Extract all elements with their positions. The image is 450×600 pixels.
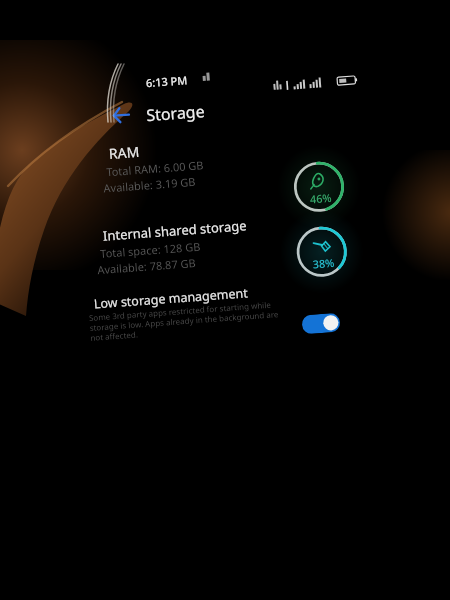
- staticText: 46%: [309, 190, 332, 206]
- button[interactable]: Boost RAM, 46 percent: [291, 159, 347, 215]
- staticText: Total space: 128 GB: [100, 239, 201, 261]
- button[interactable]: RAM: [96, 132, 280, 201]
- staticText: 6:13 PM: [145, 72, 188, 90]
- staticText: Some 3rd party apps restricted for start…: [88, 298, 280, 343]
- button[interactable]: Low storage management: [87, 278, 341, 352]
- staticText: RAM: [108, 142, 141, 163]
- staticText: Total RAM: 6.00 GB: [106, 157, 204, 179]
- staticText: Low storage management: [93, 284, 249, 313]
- button[interactable]: Internal shared storage: [94, 213, 288, 283]
- button[interactable]: Clean storage, 38 percent: [294, 224, 350, 280]
- staticText: Storage: [145, 100, 206, 126]
- staticText: 38%: [312, 255, 335, 271]
- button[interactable]: Back: [107, 101, 135, 129]
- staticText: Available: 3.19 GB: [103, 174, 197, 196]
- button[interactable]: Low storage management toggle: [301, 313, 341, 334]
- staticText: Available: 78.87 GB: [97, 255, 197, 277]
- staticText: Internal shared storage: [102, 216, 247, 245]
